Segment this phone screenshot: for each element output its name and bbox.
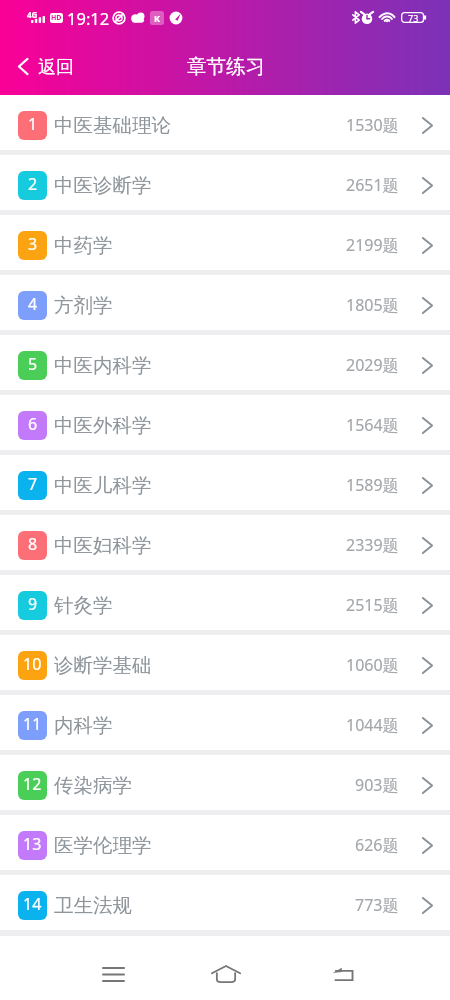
- staticText: K: [154, 12, 160, 24]
- staticText: 传染病学: [54, 773, 132, 798]
- staticText: 返回: [38, 56, 74, 79]
- staticText: 1060题: [346, 654, 399, 676]
- button[interactable]: 12: [0, 755, 450, 810]
- staticText: 中医基础理论: [54, 113, 171, 138]
- button[interactable]: 14: [0, 875, 450, 930]
- staticText: 1805题: [346, 294, 399, 316]
- staticText: 5: [28, 353, 38, 375]
- staticText: 针灸学: [54, 593, 113, 618]
- staticText: 内科学: [54, 713, 113, 738]
- staticText: 2029题: [346, 354, 399, 376]
- button[interactable]: Recent apps: [91, 952, 135, 996]
- staticText: 11: [23, 713, 42, 735]
- staticText: 中药学: [54, 233, 113, 258]
- staticText: 10: [23, 653, 42, 675]
- staticText: 773题: [355, 894, 399, 916]
- staticText: 903题: [355, 774, 399, 796]
- button[interactable]: 8: [0, 515, 450, 570]
- staticText: 中医妇科学: [54, 533, 152, 558]
- button[interactable]: 1: [0, 95, 450, 150]
- staticText: 9: [28, 593, 38, 615]
- staticText: 中医外科学: [54, 413, 152, 438]
- staticText: 1: [28, 113, 38, 135]
- staticText: 12: [23, 773, 42, 795]
- staticText: 中医诊断学: [54, 173, 152, 198]
- staticText: 626题: [355, 834, 399, 856]
- staticText: 19:12: [67, 7, 110, 29]
- button[interactable]: 6: [0, 395, 450, 450]
- button[interactable]: 返回: [0, 38, 88, 95]
- button[interactable]: 10: [0, 635, 450, 690]
- staticText: HD: [51, 13, 62, 23]
- staticText: 2651题: [346, 174, 399, 196]
- staticText: 4G: [27, 9, 38, 20]
- button[interactable]: Back: [321, 952, 365, 996]
- button[interactable]: 7: [0, 455, 450, 510]
- staticText: 2: [28, 173, 38, 195]
- button[interactable]: 13: [0, 815, 450, 870]
- button[interactable]: 2: [0, 155, 450, 210]
- staticText: 1564题: [346, 414, 399, 436]
- button[interactable]: Home: [204, 952, 248, 996]
- staticText: 4: [28, 293, 38, 315]
- staticText: 中医儿科学: [54, 473, 152, 498]
- staticText: 1530题: [346, 114, 399, 136]
- button[interactable]: 3: [0, 215, 450, 270]
- staticText: 3: [28, 233, 38, 255]
- staticText: 2199题: [346, 234, 399, 256]
- button[interactable]: 11: [0, 695, 450, 750]
- staticText: 中医内科学: [54, 353, 152, 378]
- staticText: 章节练习: [187, 54, 265, 79]
- staticText: 13: [23, 833, 42, 855]
- staticText: 14: [23, 893, 42, 915]
- staticText: 方剂学: [54, 293, 113, 318]
- button[interactable]: 5: [0, 335, 450, 390]
- staticText: 诊断学基础: [54, 653, 152, 678]
- staticText: 1044题: [346, 714, 399, 736]
- staticText: 1589题: [346, 474, 399, 496]
- staticText: 73: [408, 12, 419, 23]
- staticText: 2339题: [346, 534, 399, 556]
- staticText: 6: [28, 413, 38, 435]
- staticText: 8: [28, 533, 38, 555]
- staticText: 卫生法规: [54, 893, 132, 918]
- staticText: 医学伦理学: [54, 833, 152, 858]
- staticText: 2515题: [346, 594, 399, 616]
- button[interactable]: 4: [0, 275, 450, 330]
- staticText: 7: [28, 473, 38, 495]
- button[interactable]: 9: [0, 575, 450, 630]
